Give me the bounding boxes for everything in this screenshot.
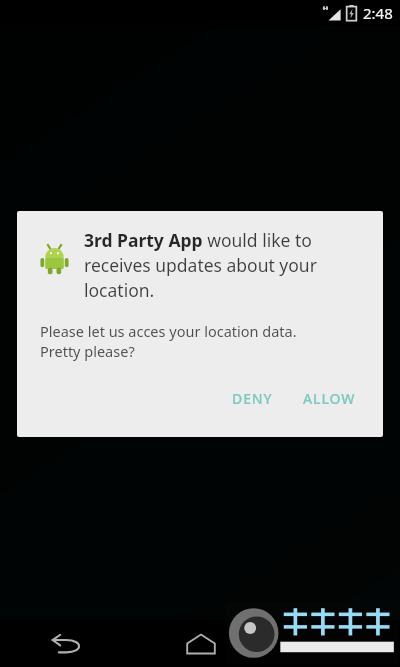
button[interactable]: Recent apps	[267, 620, 400, 667]
staticText: ALLOW	[303, 389, 356, 408]
button[interactable]: Home	[134, 620, 267, 667]
button[interactable]: DENY	[225, 383, 280, 414]
staticText: DENY	[232, 389, 273, 408]
staticText: 3rd Party App would like to receives upd…	[84, 228, 369, 302]
staticText: Please let us acces your location data. …	[40, 321, 297, 361]
button[interactable]: ALLOW	[296, 383, 363, 414]
staticText: 2:48	[363, 3, 393, 23]
button[interactable]: Back	[0, 620, 134, 667]
